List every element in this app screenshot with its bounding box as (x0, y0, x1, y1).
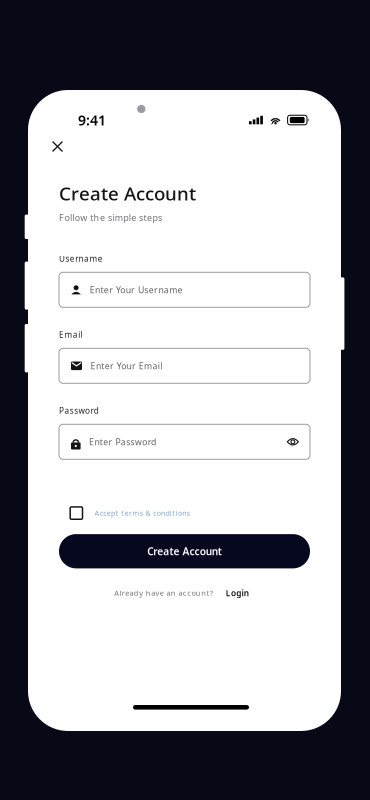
staticText: 9:41 (78, 110, 106, 130)
button[interactable]: Accept terms & conditions (70, 502, 240, 524)
staticText: Follow the simple steps (59, 211, 162, 224)
staticText: Login (226, 587, 249, 599)
staticText: Username (59, 253, 103, 264)
button[interactable]: Show password (287, 437, 299, 446)
button[interactable]: Create Account (59, 534, 310, 568)
staticText: Enter Your Email (90, 360, 162, 372)
staticText: Password (59, 405, 99, 416)
button[interactable]: Close (37, 126, 78, 166)
staticText: Enter Password (89, 436, 156, 448)
staticText: Create Account (59, 180, 196, 206)
button[interactable]: Login (226, 587, 249, 599)
staticText: Accept terms & conditions (95, 508, 190, 518)
staticText: Email (59, 329, 83, 340)
staticText: Enter Your Username (90, 284, 182, 296)
staticText: Already have an account? (114, 588, 213, 598)
staticText: Create Account (147, 544, 222, 558)
